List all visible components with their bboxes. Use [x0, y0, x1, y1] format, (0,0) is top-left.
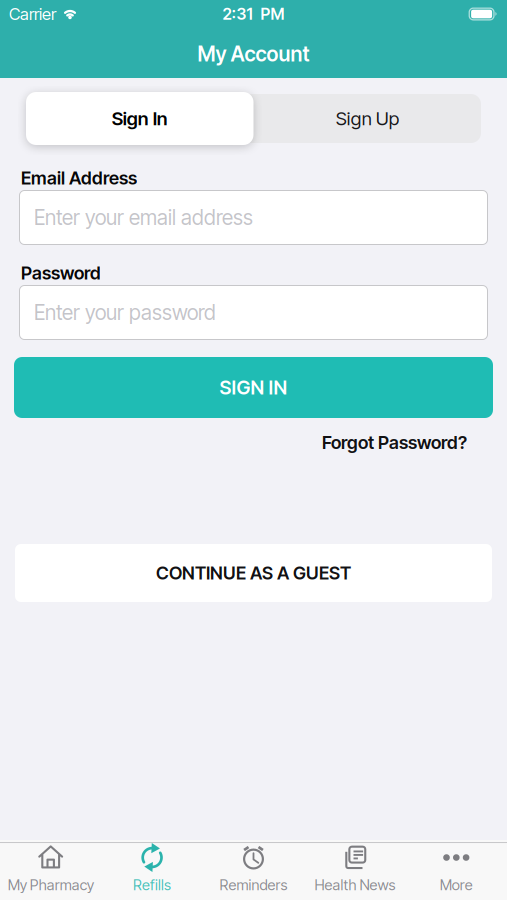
button[interactable]: Sign In: [26, 92, 253, 145]
staticText: 2:31 PM: [222, 4, 284, 24]
staticText: Reminders: [219, 876, 287, 894]
staticText: Enter your email address: [34, 205, 253, 230]
staticText: Health News: [314, 876, 395, 894]
button[interactable]: Refills: [101, 843, 203, 894]
staticText: Forgot Password?: [322, 432, 467, 453]
staticText: My Account: [197, 41, 309, 66]
staticText: Enter your password: [34, 300, 216, 325]
staticText: Refills: [133, 876, 171, 894]
staticText: Sign Up: [336, 107, 399, 130]
staticText: My Pharmacy: [8, 876, 94, 894]
button[interactable]: SIGN IN: [0, 357, 507, 418]
staticText: Password: [21, 262, 101, 284]
button[interactable]: My Pharmacy: [0, 843, 101, 894]
button[interactable]: Forgot Password?: [322, 432, 467, 453]
button[interactable]: More: [406, 843, 507, 894]
staticText: More: [440, 876, 473, 894]
button[interactable]: Reminders: [203, 843, 304, 894]
button[interactable]: Health News: [304, 843, 406, 894]
staticText: Carrier: [9, 4, 56, 24]
staticText: Email Address: [21, 167, 137, 189]
staticText: Sign In: [112, 107, 168, 130]
button[interactable]: CONTINUE AS A GUEST: [0, 544, 507, 602]
staticText: SIGN IN: [219, 376, 287, 399]
staticText: CONTINUE AS A GUEST: [156, 562, 351, 584]
button[interactable]: Sign Up: [253, 92, 481, 145]
